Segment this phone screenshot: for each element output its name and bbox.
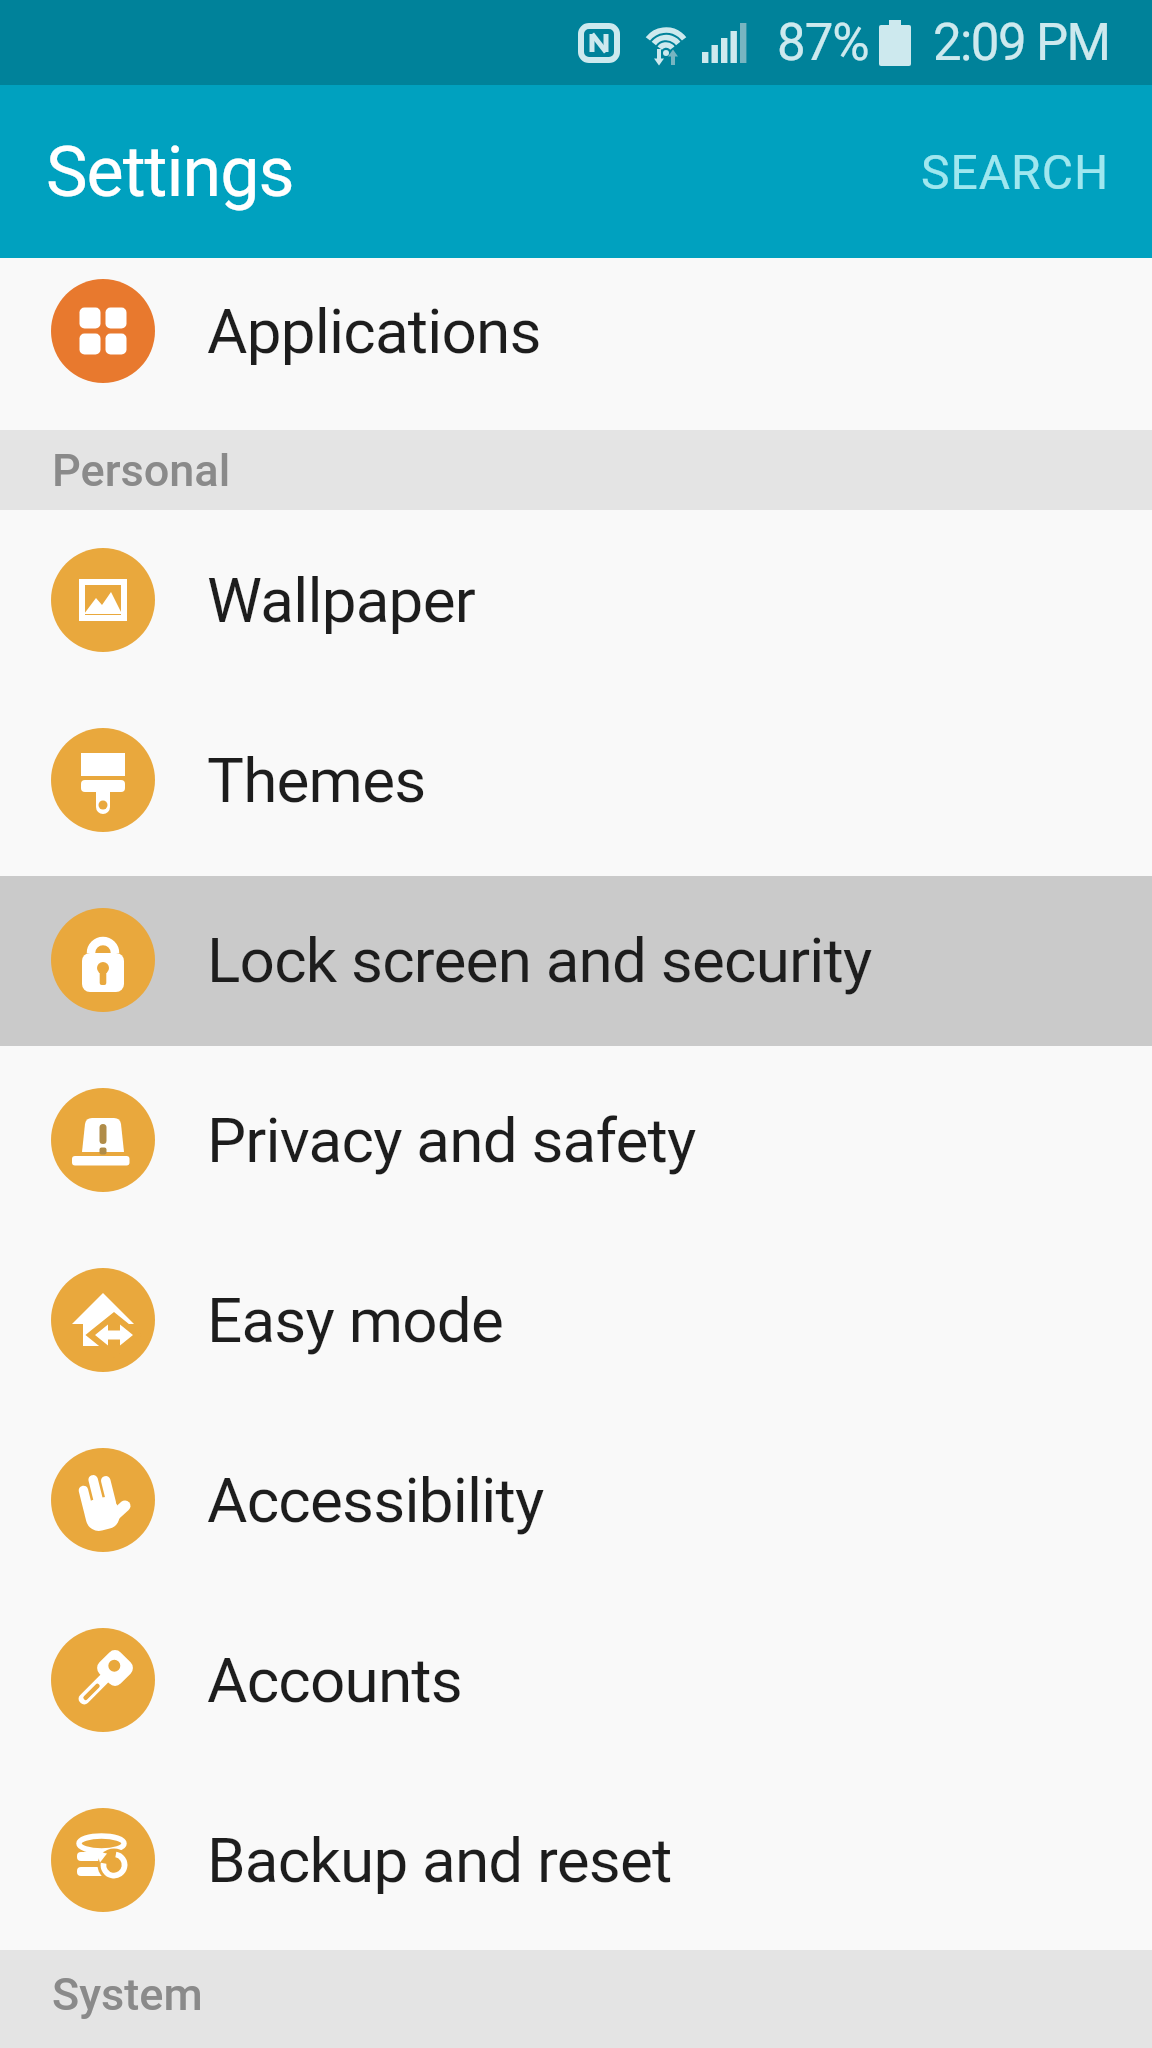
staticText: Personal bbox=[52, 444, 231, 497]
button[interactable]: Themes bbox=[0, 690, 1152, 870]
button[interactable]: Privacy and safety bbox=[0, 1050, 1152, 1230]
staticText: Wallpaper bbox=[207, 564, 475, 637]
staticText: Backup and reset bbox=[207, 1824, 672, 1897]
button[interactable]: Wallpaper bbox=[0, 510, 1152, 690]
staticText: Applications bbox=[207, 295, 541, 368]
button[interactable]: Accounts bbox=[0, 1590, 1152, 1770]
button[interactable]: Lock screen and security bbox=[0, 870, 1152, 1050]
staticText: 87% bbox=[777, 13, 869, 73]
staticText: SEARCH bbox=[921, 144, 1110, 200]
staticText: Accessibility bbox=[207, 1464, 544, 1537]
button[interactable]: Applications bbox=[0, 258, 1152, 430]
button[interactable]: SEARCH bbox=[909, 128, 1122, 216]
button[interactable]: Backup and reset bbox=[0, 1770, 1152, 1950]
button[interactable]: Easy mode bbox=[0, 1230, 1152, 1410]
button[interactable]: Accessibility bbox=[0, 1410, 1152, 1590]
staticText: System bbox=[52, 1968, 203, 2021]
staticText: Privacy and safety bbox=[207, 1104, 696, 1177]
staticText: Accounts bbox=[207, 1644, 463, 1717]
staticText: Easy mode bbox=[207, 1284, 504, 1357]
staticText: Lock screen and security bbox=[207, 924, 872, 997]
staticText: 2:09 PM bbox=[933, 13, 1110, 73]
staticText: Themes bbox=[207, 744, 426, 817]
staticText: Settings bbox=[46, 131, 294, 213]
